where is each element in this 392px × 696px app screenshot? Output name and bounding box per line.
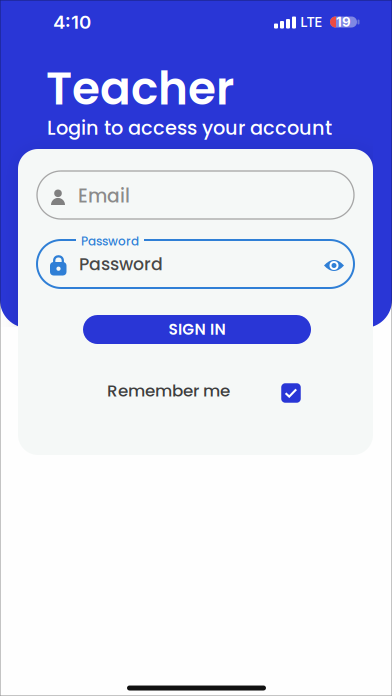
button[interactable]: Password [37,233,354,288]
staticText: Email [78,183,130,209]
staticText: 19 [336,14,351,30]
staticText: Password [79,252,163,276]
staticText: Login to access your account [47,114,332,142]
staticText: SIGN IN [169,319,225,340]
staticText: Password [81,233,139,250]
button[interactable]: Remember me [281,383,301,403]
button[interactable]: Show password [324,260,344,271]
staticText: Teacher [46,57,234,120]
staticText: 4:10 [53,11,91,33]
staticText: Remember me [107,379,230,402]
button[interactable]: Email [37,171,354,219]
button[interactable]: SIGN IN [83,315,311,344]
staticText: LTE [300,15,322,30]
